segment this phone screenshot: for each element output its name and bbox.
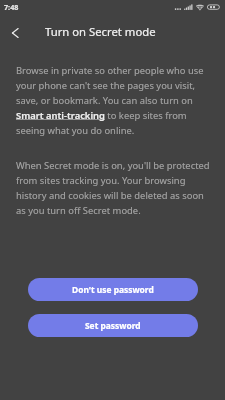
staticText: Don't use password bbox=[72, 284, 154, 295]
button[interactable]: Set password bbox=[28, 314, 198, 337]
staticText: Browse in private so other people who us… bbox=[16, 64, 213, 136]
staticText: 7:48 bbox=[4, 2, 19, 12]
staticText: When Secret mode is on, you'll be protec… bbox=[16, 159, 213, 216]
button[interactable]: Don't use password bbox=[28, 278, 198, 301]
button[interactable]: Back bbox=[0, 19, 28, 44]
staticText: Turn on Secret mode bbox=[45, 24, 156, 39]
staticText: Set password bbox=[85, 320, 141, 331]
